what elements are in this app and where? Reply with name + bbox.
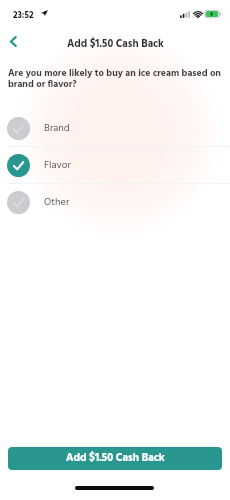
staticText: Brand bbox=[44, 120, 70, 136]
staticText: Are you more likely to buy an ice cream … bbox=[8, 66, 228, 92]
button[interactable]: Back bbox=[5, 33, 21, 49]
button[interactable]: Brand bbox=[0, 110, 230, 146]
button[interactable]: Flavor bbox=[0, 147, 230, 183]
staticText: Add $1.50 Cash Back bbox=[66, 450, 165, 467]
staticText: Other bbox=[44, 194, 70, 210]
button[interactable]: Other bbox=[0, 184, 230, 220]
button[interactable]: Add $1.50 Cash Back bbox=[8, 447, 222, 470]
staticText: Add $1.50 Cash Back bbox=[67, 36, 164, 53]
staticText: 23:52 bbox=[13, 9, 34, 23]
staticText: Flavor bbox=[44, 157, 71, 173]
